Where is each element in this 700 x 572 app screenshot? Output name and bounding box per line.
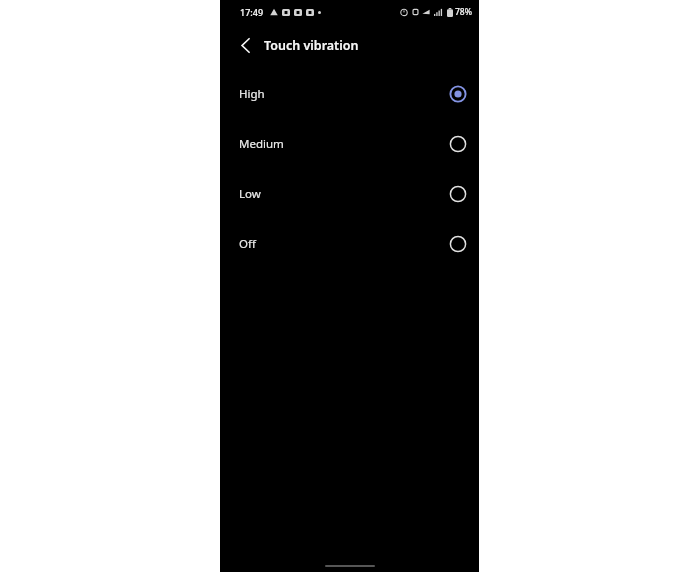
staticText: Low bbox=[239, 186, 261, 202]
staticText: Medium bbox=[239, 136, 284, 152]
button[interactable]: Off bbox=[220, 219, 479, 269]
staticText: 78% bbox=[455, 6, 472, 18]
button[interactable]: High bbox=[220, 69, 479, 119]
staticText: Touch vibration bbox=[264, 37, 359, 54]
button[interactable]: Low bbox=[220, 169, 479, 219]
button[interactable]: Back bbox=[232, 32, 258, 58]
staticText: 17:49 bbox=[240, 6, 264, 18]
button[interactable]: Medium bbox=[220, 119, 479, 169]
staticText: High bbox=[239, 86, 265, 102]
staticText: Off bbox=[239, 236, 256, 252]
